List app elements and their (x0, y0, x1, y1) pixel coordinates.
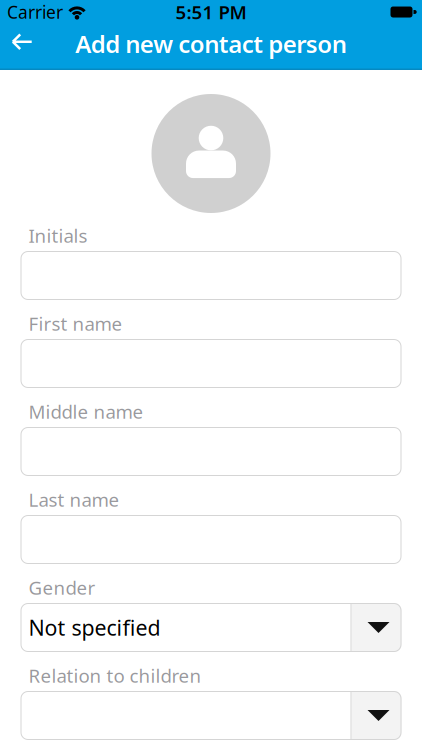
button[interactable]: Back (0, 21, 32, 62)
staticText: Carrier (7, 0, 63, 23)
staticText: Last name (28, 487, 119, 512)
staticText: Not specified (28, 613, 160, 642)
staticText: Middle name (28, 399, 143, 424)
button[interactable]: Gender (20, 603, 401, 652)
staticText: 5:51 PM (175, 0, 246, 24)
button[interactable]: Add photo (151, 94, 270, 213)
staticText: Initials (28, 223, 87, 248)
staticText: Add new contact person (75, 28, 347, 60)
staticText: First name (28, 311, 122, 336)
button[interactable]: Relation to children (20, 691, 401, 740)
staticText: Gender (28, 575, 95, 600)
staticText: Relation to children (28, 663, 201, 688)
